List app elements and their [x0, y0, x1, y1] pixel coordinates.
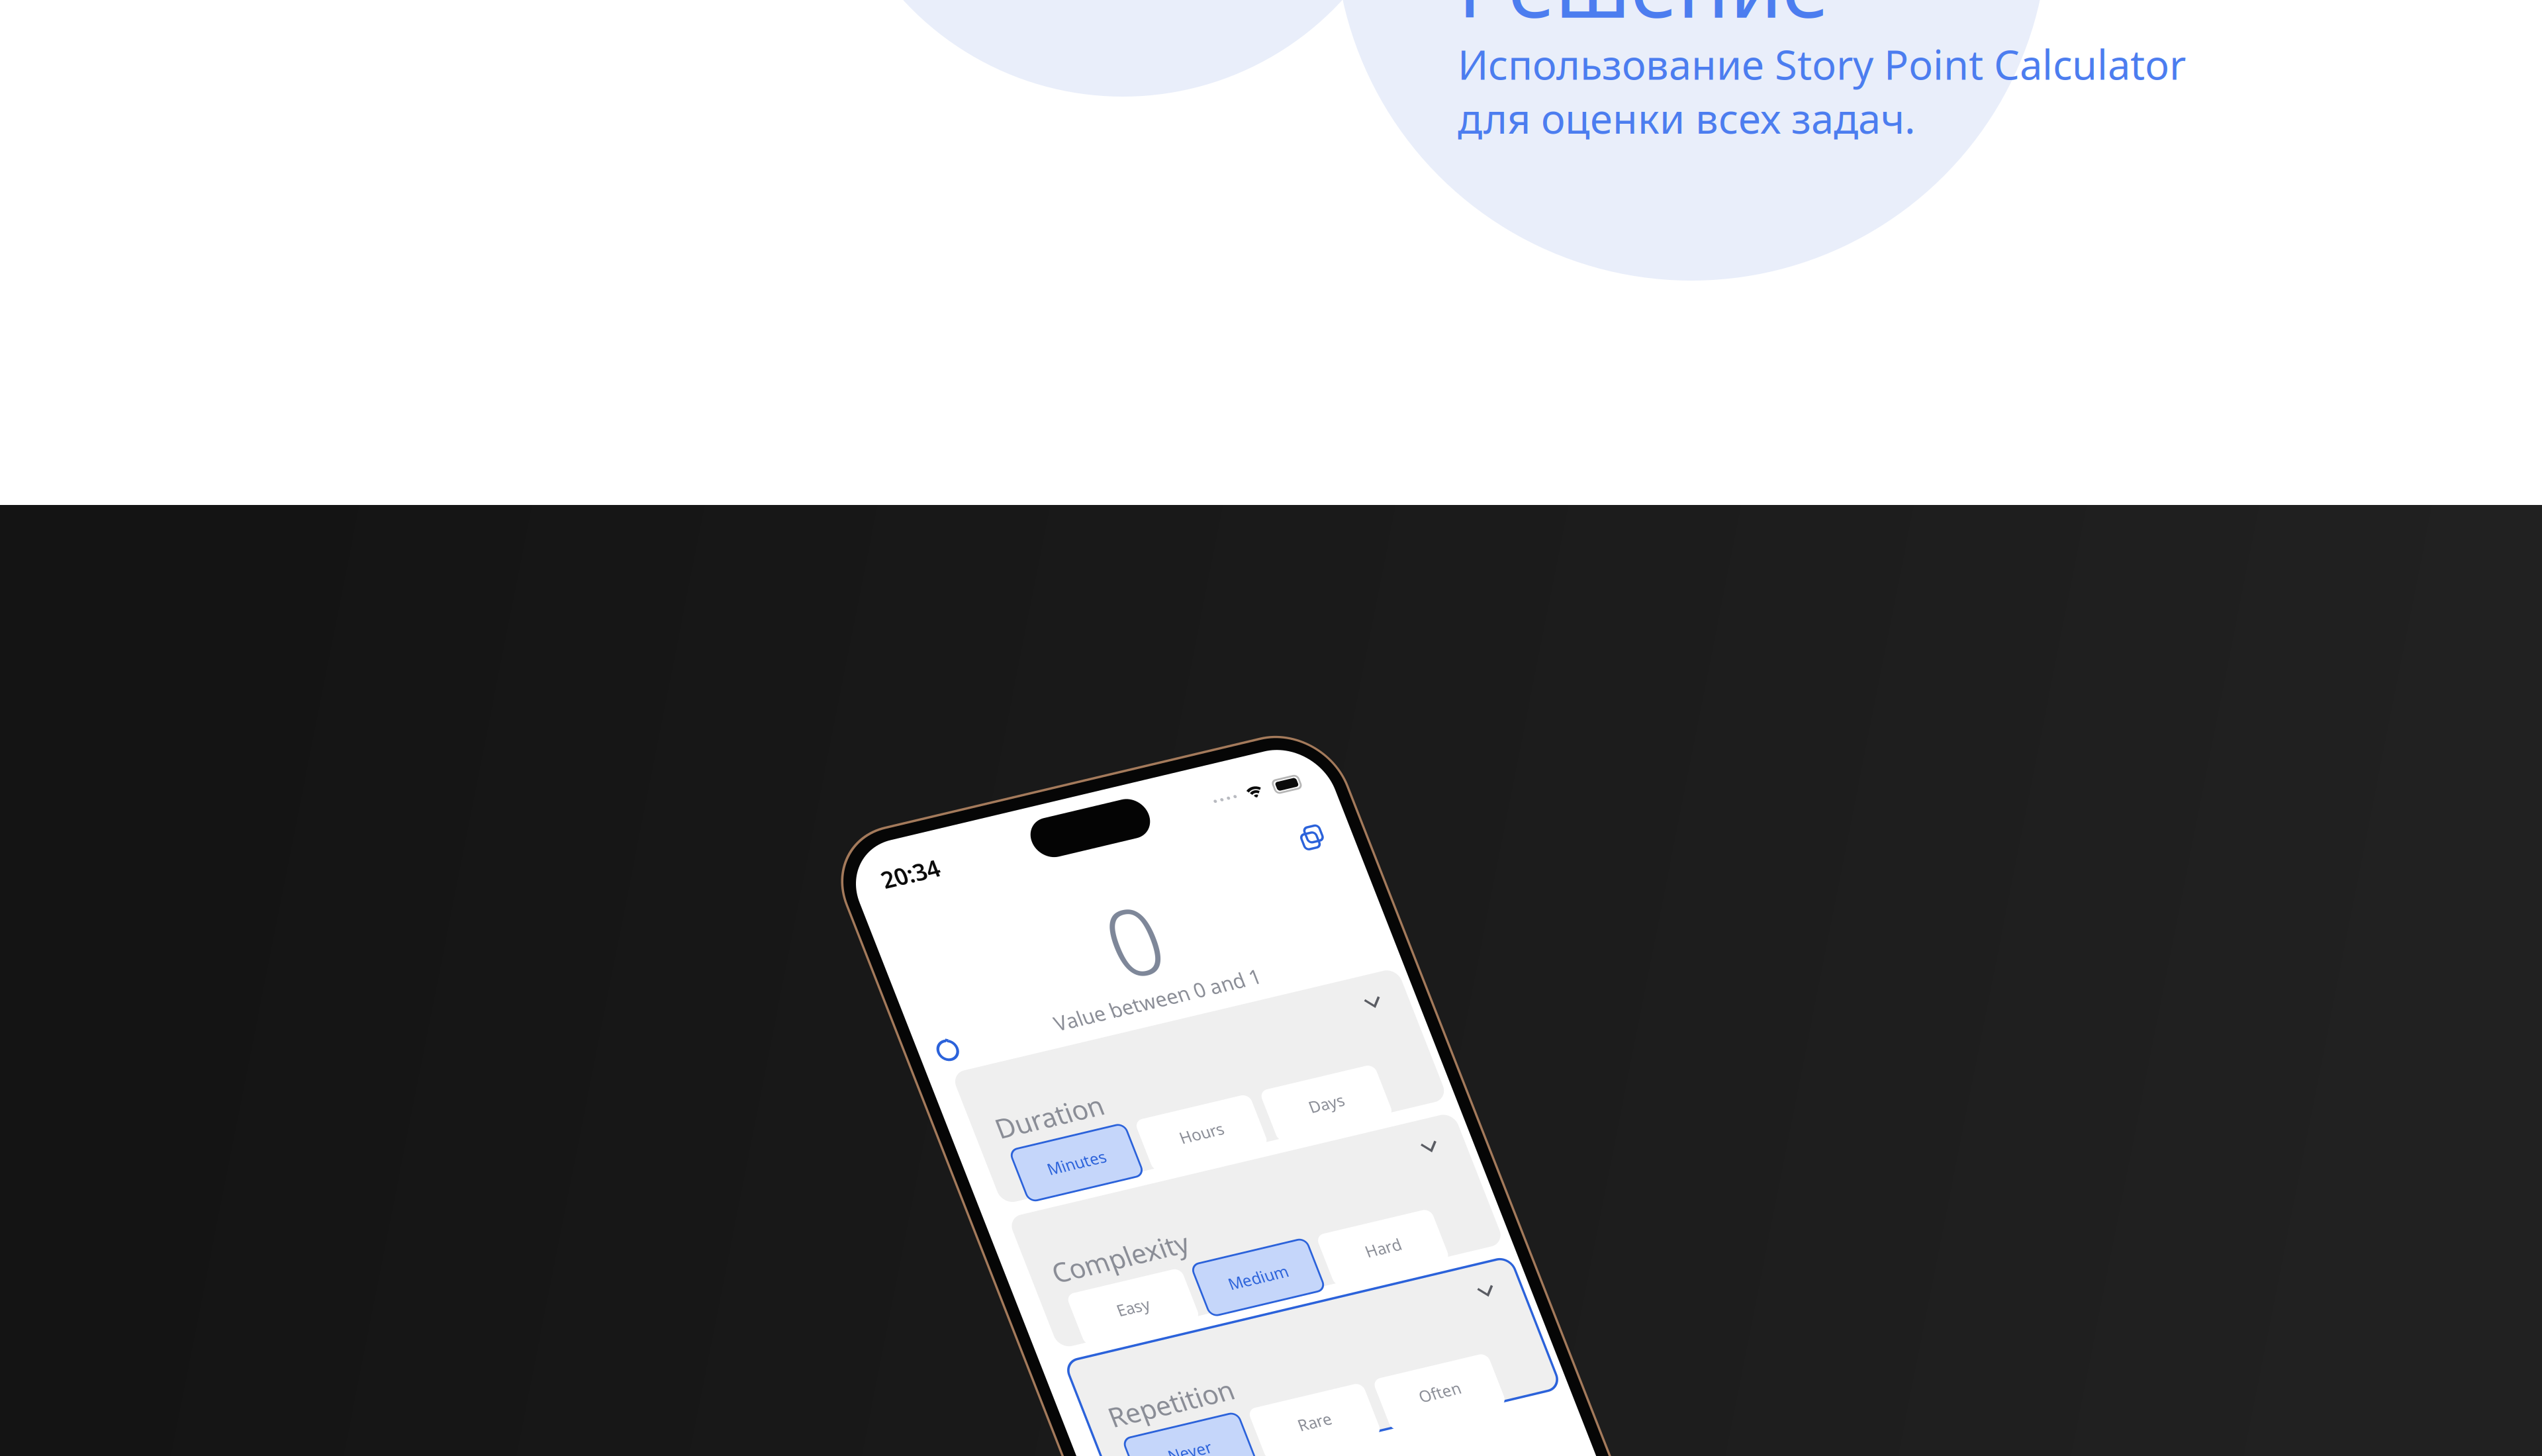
- staticText: Решение: [1458, 0, 1829, 41]
- button[interactable]: Hours: [280, 489, 453, 567]
- staticText: Использование Story Point Calculator: [1458, 37, 2186, 91]
- button[interactable]: Minutes: [93, 489, 265, 567]
- button[interactable]: Days: [468, 489, 641, 567]
- staticText: для оценки всех задач.: [1458, 91, 1915, 145]
